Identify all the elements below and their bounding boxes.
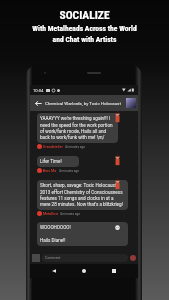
button[interactable]: Lifer Time! (37, 156, 79, 167)
button[interactable]: Recent apps (108, 265, 120, 277)
button[interactable]: Back (33, 98, 43, 108)
staticText: 4 minutes ago (60, 212, 81, 216)
staticText: SOCIALIZE (59, 8, 110, 21)
staticText: 10:04 (33, 88, 44, 93)
button[interactable]: Home (78, 265, 90, 277)
staticText: Bois Ma (43, 169, 57, 173)
button[interactable]: Send (130, 255, 136, 261)
staticText: Comment (45, 256, 61, 260)
button[interactable]: Short, sharp, savage: Toxic Holocaust's … (37, 180, 128, 210)
staticText: Lifer Time! (40, 159, 62, 164)
button[interactable]: Album art (126, 98, 136, 108)
staticText: Short, sharp, savage: Toxic Holocaust's … (40, 183, 125, 207)
button[interactable]: Back (48, 265, 60, 277)
staticText: Grandsteller (43, 145, 63, 149)
button[interactable]: Comment (42, 254, 128, 262)
staticText: 4 minutes ago (59, 169, 80, 173)
staticText: 4 minutes ago (65, 145, 86, 149)
staticText: WOOOHOOOO! Hails Diane!! (40, 225, 71, 243)
staticText: With Metalheads Across the World and Cha… (32, 24, 137, 44)
button[interactable]: WOOOHOOOO! Hails Diane!! (37, 222, 128, 246)
button[interactable]: YAAAYYY we're threshing again!!! I need … (37, 113, 118, 143)
staticText: Metallica (43, 212, 58, 216)
staticText: YAAAYYY we're threshing again!!! I need … (40, 116, 115, 140)
staticText: Chemical Warlords, by Toxic Holocaust (45, 101, 121, 106)
